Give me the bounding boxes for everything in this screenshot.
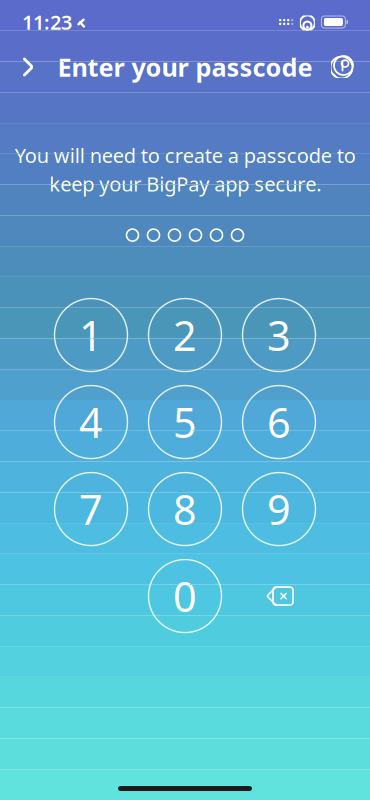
button[interactable]: 5 [148, 386, 221, 459]
staticText: 11:23 [22, 9, 72, 35]
button[interactable]: Back [6, 45, 50, 89]
button[interactable]: 3 [242, 299, 315, 372]
button[interactable]: 0 [148, 560, 221, 633]
staticText: You will need to create a passcode to [14, 142, 355, 169]
button[interactable]: 7 [54, 473, 127, 546]
button[interactable]: 4 [54, 386, 127, 459]
staticText: 9 [267, 482, 291, 536]
staticText: 3 [267, 308, 291, 362]
button[interactable]: 1 [54, 299, 127, 372]
staticText: 4 [79, 395, 103, 449]
staticText: 0 [173, 569, 197, 623]
button[interactable]: 2 [148, 299, 221, 372]
staticText: 8 [173, 482, 197, 536]
staticText: 7 [79, 482, 103, 536]
staticText: keep your BigPay app secure. [49, 171, 321, 197]
button[interactable]: 8 [148, 473, 221, 546]
staticText: 1 [79, 308, 103, 362]
staticText: 2 [173, 308, 197, 362]
button[interactable]: Support [320, 45, 364, 89]
staticText: 5 [173, 395, 197, 449]
button[interactable]: 9 [242, 473, 315, 546]
button[interactable]: 6 [242, 386, 315, 459]
button[interactable]: Delete [242, 560, 315, 633]
staticText: 6 [267, 395, 291, 449]
staticText: Enter your passcode [57, 50, 312, 84]
